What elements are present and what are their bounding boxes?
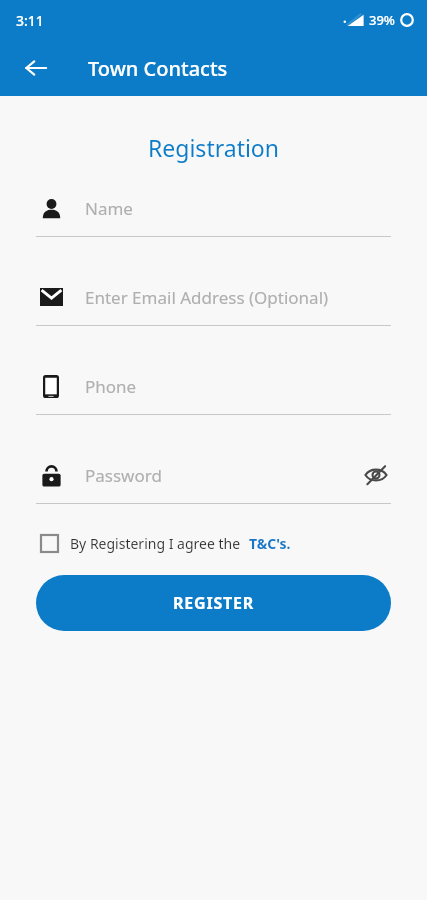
button[interactable]: By Registering I agree the — [40, 534, 387, 553]
staticText: By Registering I agree the — [70, 534, 241, 553]
staticText: REGISTER — [173, 592, 255, 614]
button[interactable]: Back — [14, 46, 58, 90]
staticText: Password — [85, 464, 361, 487]
staticText: T&C's. — [249, 534, 291, 553]
button[interactable]: T&C's. — [249, 534, 291, 553]
staticText: Name — [85, 197, 391, 220]
staticText: Town Contacts — [88, 55, 228, 82]
staticText: Enter Email Address (Optional) — [85, 286, 391, 309]
button[interactable]: Show password — [361, 460, 391, 490]
button[interactable]: Name — [36, 191, 391, 237]
staticText: Phone — [85, 375, 391, 398]
button[interactable]: REGISTER — [36, 575, 391, 631]
button[interactable]: Enter Email Address (Optional) — [36, 280, 391, 326]
staticText: 39% — [369, 11, 395, 29]
staticText: 3:11 — [16, 11, 44, 30]
button[interactable]: Phone — [36, 369, 391, 415]
staticText: Registration — [0, 132, 427, 163]
button[interactable]: Password — [36, 458, 391, 504]
